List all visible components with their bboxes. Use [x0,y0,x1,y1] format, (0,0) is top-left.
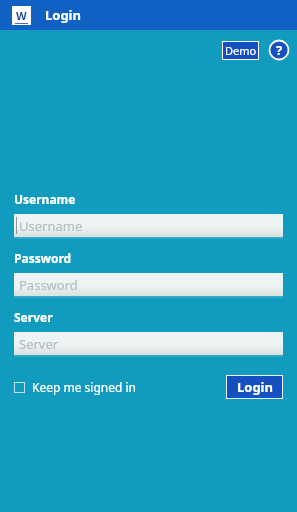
button[interactable]: Password [14,273,283,298]
staticText: ? [276,41,283,59]
staticText: Login [237,378,273,396]
staticText: Login [45,6,81,24]
button[interactable]: App logo [12,6,31,25]
staticText: Server [14,309,53,325]
staticText: Keep me signed in [32,379,136,395]
staticText: Username [14,191,76,207]
staticText: W [16,8,27,23]
button[interactable]: Server [14,332,283,357]
button[interactable]: Keep me signed in [14,379,136,395]
staticText: Server [19,335,59,353]
staticText: Username [19,217,83,235]
staticText: Password [19,276,78,294]
button[interactable]: Help [268,39,290,61]
button[interactable]: Username [14,214,283,239]
staticText: Password [14,250,72,266]
staticText: Demo [225,43,257,58]
button[interactable]: Demo [222,41,259,60]
button[interactable]: Login [226,375,283,399]
